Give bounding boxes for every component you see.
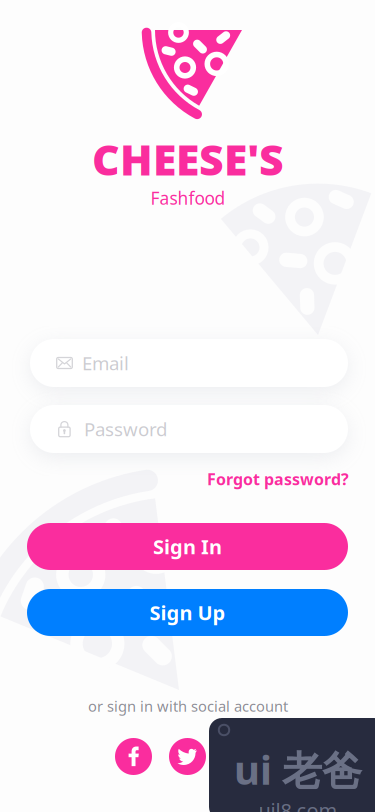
staticText: uil8.com	[258, 797, 337, 812]
button[interactable]: Sign in with Twitter	[169, 738, 206, 775]
staticText: CHEESE'S	[92, 131, 284, 187]
staticText: Email	[82, 351, 129, 375]
button[interactable]: Forgot password?	[207, 464, 349, 494]
staticText: Password	[84, 417, 167, 441]
staticText: Sign Up	[149, 599, 225, 626]
button[interactable]: Sign In	[27, 523, 348, 570]
button[interactable]: Sign Up	[27, 589, 348, 636]
staticText: Fashfood	[150, 186, 225, 209]
staticText: Forgot password?	[207, 468, 349, 490]
button[interactable]: Sign in with Google	[223, 738, 260, 775]
staticText: ui 老爸	[234, 743, 362, 796]
staticText: Sign In	[153, 533, 222, 560]
button[interactable]: Sign in with Facebook	[115, 738, 152, 775]
staticText: or sign in with social account	[88, 696, 288, 716]
